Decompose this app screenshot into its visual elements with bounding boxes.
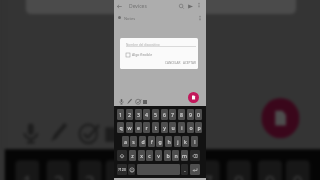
- staticText: p: [197, 124, 201, 131]
- button[interactable]: 5: [136, 160, 161, 180]
- button[interactable]: 1: [117, 109, 124, 120]
- button[interactable]: h: [165, 136, 172, 147]
- button[interactable]: Search: [178, 3, 185, 10]
- button[interactable]: j: [174, 136, 181, 147]
- button[interactable]: Checklist: [78, 120, 102, 146]
- staticText: y: [163, 124, 166, 131]
- button[interactable]: 2: [46, 160, 71, 180]
- staticText: 6: [163, 111, 166, 118]
- button[interactable]: b: [164, 150, 171, 161]
- button[interactable]: t: [152, 122, 159, 133]
- staticText: Nombre del dispositivo: [126, 43, 160, 47]
- staticText: 1: [119, 111, 122, 118]
- button[interactable]: Backspace: [190, 150, 200, 161]
- button[interactable]: x: [138, 150, 145, 161]
- button[interactable]: 0: [286, 160, 310, 180]
- staticText: x: [140, 152, 143, 159]
- button[interactable]: 4: [105, 160, 130, 180]
- button[interactable]: Checklist: [135, 98, 142, 105]
- button[interactable]: f: [148, 136, 155, 147]
- button[interactable]: 3: [135, 109, 142, 120]
- button[interactable]: r: [143, 122, 150, 133]
- button[interactable]: w: [126, 122, 133, 133]
- button[interactable]: Shift: [117, 150, 127, 161]
- button[interactable]: 8: [178, 109, 185, 120]
- button[interactable]: Add image: [105, 127, 119, 142]
- button[interactable]: a: [122, 136, 129, 147]
- button[interactable]: Voice note: [19, 120, 43, 146]
- button[interactable]: d: [139, 136, 146, 147]
- button[interactable]: Draw: [46, 120, 71, 146]
- button[interactable]: Algo flexible: [126, 52, 153, 57]
- button[interactable]: Back: [116, 3, 123, 10]
- button[interactable]: l: [191, 136, 198, 147]
- button[interactable]: 3: [78, 160, 102, 180]
- button[interactable]: 7: [195, 160, 220, 180]
- button[interactable]: m: [181, 150, 188, 161]
- button[interactable]: 0: [195, 109, 202, 120]
- button[interactable]: 6: [168, 160, 192, 180]
- staticText: Algo flexible: [132, 52, 153, 57]
- button[interactable]: g: [156, 136, 163, 147]
- button[interactable]: Enter: [190, 164, 200, 175]
- staticText: 3: [137, 111, 140, 118]
- staticText: r: [145, 124, 148, 131]
- button[interactable]: k: [182, 136, 189, 147]
- button[interactable]: 1: [15, 160, 39, 180]
- button[interactable]: o: [187, 122, 194, 133]
- staticText: 5: [154, 111, 157, 118]
- button[interactable]: n: [172, 150, 179, 161]
- staticText: 8: [180, 111, 183, 118]
- button[interactable]: Notes: [114, 13, 206, 24]
- button[interactable]: ?123: [117, 164, 127, 175]
- staticText: a: [124, 138, 127, 145]
- staticText: 3: [84, 167, 95, 180]
- staticText: n: [174, 152, 178, 159]
- button[interactable]: 9: [258, 160, 282, 180]
- button[interactable]: 5: [152, 109, 159, 120]
- staticText: 9: [265, 167, 275, 180]
- staticText: 2: [128, 111, 131, 118]
- button[interactable]: e: [135, 122, 142, 133]
- button[interactable]: .: [181, 164, 188, 175]
- button[interactable]: 4: [143, 109, 150, 120]
- button[interactable]: s: [130, 136, 137, 147]
- button[interactable]: 6: [161, 109, 168, 120]
- staticText: Devices: [129, 3, 147, 10]
- staticText: 4: [112, 167, 123, 180]
- button[interactable]: y: [161, 122, 168, 133]
- button[interactable]: 7: [169, 109, 176, 120]
- staticText: b: [166, 152, 170, 159]
- button[interactable]: q: [117, 122, 124, 133]
- staticText: 0: [293, 167, 303, 180]
- button[interactable]: ACEPTAR: [182, 61, 197, 65]
- button[interactable]: More options: [196, 2, 202, 8]
- button[interactable]: c: [146, 150, 153, 161]
- button[interactable]: Voice note: [118, 98, 125, 105]
- button[interactable]: Draw: [126, 98, 133, 105]
- button[interactable]: v: [155, 150, 162, 161]
- button[interactable]: z: [129, 150, 136, 161]
- staticText: 0: [197, 111, 200, 118]
- staticText: o: [189, 124, 193, 131]
- staticText: 4: [145, 111, 148, 118]
- button[interactable]: i: [178, 122, 185, 133]
- button[interactable]: New note: [261, 98, 299, 138]
- staticText: 2: [53, 167, 64, 180]
- staticText: 7: [202, 167, 213, 180]
- button[interactable]: 9: [187, 109, 194, 120]
- staticText: c: [148, 152, 151, 159]
- button[interactable]: 8: [227, 160, 251, 180]
- button[interactable]: CANCELAR: [164, 61, 182, 65]
- button[interactable]: Send: [187, 3, 194, 10]
- button[interactable]: Emoji: [128, 164, 135, 175]
- button[interactable]: 2: [126, 109, 133, 120]
- button[interactable]: u: [169, 122, 176, 133]
- staticText: t: [155, 124, 157, 131]
- staticText: j: [177, 138, 179, 145]
- button[interactable]: p: [195, 122, 202, 133]
- staticText: w: [127, 124, 132, 131]
- button[interactable]: New note: [188, 92, 199, 103]
